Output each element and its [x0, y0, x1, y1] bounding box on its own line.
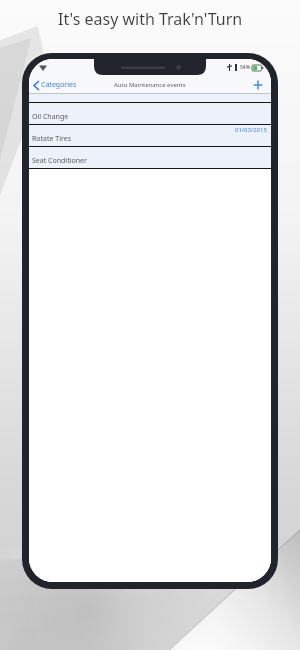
- staticText: It's easy with Trak'n'Turn: [58, 8, 243, 30]
- staticText: Auto Maintenance events: [114, 81, 186, 89]
- button[interactable]: Categories: [29, 78, 83, 92]
- button[interactable]: 01/03/2015: [29, 125, 271, 146]
- button[interactable]: Seat Conditioner: [29, 147, 271, 168]
- staticText: 54%: [240, 64, 250, 71]
- button[interactable]: Oil Change: [29, 103, 271, 124]
- staticText: Categories: [41, 80, 77, 90]
- staticText: Seat Conditioner: [32, 156, 87, 166]
- staticText: Oil Change: [32, 112, 69, 122]
- staticText: Rotate Tires: [32, 134, 72, 144]
- staticText: 01/03/2015: [235, 126, 267, 134]
- button[interactable]: Add event: [245, 78, 271, 92]
